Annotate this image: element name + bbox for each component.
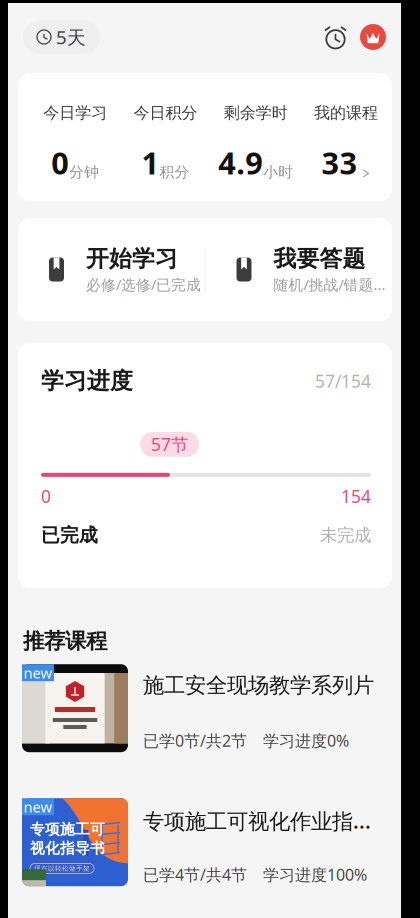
staticText: 推荐课程 [23, 628, 107, 654]
staticText: 0 [41, 485, 51, 508]
button[interactable]: 5天 [23, 20, 100, 54]
staticText: 现在以轻松做手架 [34, 864, 90, 873]
staticText: 施工安全现场教学系列片 [143, 672, 374, 698]
staticText: 积分 [159, 163, 189, 181]
staticText: 今日积分 [133, 103, 197, 123]
staticText: 已学0节/共2节 [143, 730, 247, 751]
staticText: 1 [141, 142, 159, 183]
staticText: 随机/挑战/错题... [273, 275, 385, 294]
staticText: 已学4节/共4节 [143, 864, 247, 885]
button[interactable]: VIP membership [360, 24, 386, 50]
staticText: 学习进度0% [263, 730, 349, 751]
button[interactable]: 开始学习 [18, 236, 204, 302]
staticText: 小时 [263, 163, 293, 181]
button[interactable]: new [8, 654, 401, 788]
button[interactable]: Reminders [324, 25, 347, 48]
staticText: 专项施工可视化作业指导书... [143, 806, 391, 835]
staticText: 57/154 [315, 369, 371, 392]
staticText: 我的课程 [314, 103, 378, 123]
staticText: new [23, 663, 52, 682]
staticText: 4.9 [218, 142, 263, 183]
staticText: 5天 [56, 25, 86, 49]
staticText: 剩余学时 [224, 103, 288, 123]
staticText: 视化指导书 [30, 839, 105, 857]
staticText: 开始学习 [86, 245, 178, 273]
staticText: 专项施工可 [30, 820, 105, 838]
button[interactable]: 专项施工可 [8, 788, 401, 918]
staticText: 必修/选修/已完成 [86, 275, 201, 294]
staticText: 154 [341, 485, 371, 508]
staticText: 分钟 [69, 163, 99, 181]
staticText: 已完成 [41, 524, 98, 547]
staticText: 今日学习 [43, 103, 107, 123]
staticText: 学习进度 [41, 367, 133, 395]
button[interactable]: 我要答题 [205, 236, 392, 302]
staticText: 学习进度100% [263, 864, 367, 885]
staticText: 0 [51, 142, 69, 183]
staticText: new [23, 797, 52, 816]
staticText: 57节 [151, 433, 188, 456]
staticText: 33 [321, 142, 357, 183]
staticText: 未完成 [320, 525, 371, 546]
staticText: 我要答题 [273, 245, 365, 273]
